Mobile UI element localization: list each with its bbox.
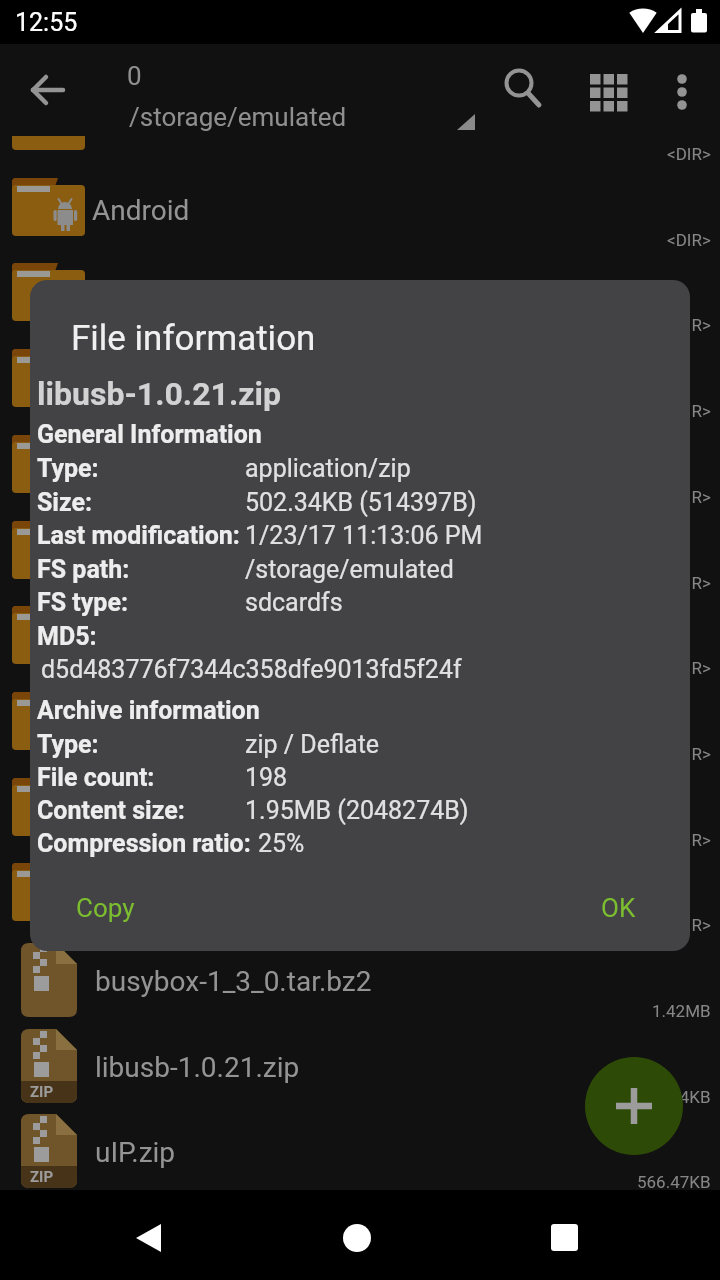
button[interactable] (0, 947, 720, 1033)
staticText: <DIR> (667, 658, 711, 678)
staticText: /storage/emulated (129, 102, 347, 132)
button[interactable] (110, 50, 490, 134)
staticText: MD5: (37, 622, 97, 651)
button[interactable] (494, 62, 550, 118)
staticText: 566.47KB (637, 1172, 711, 1192)
staticText: Type: (37, 454, 99, 483)
staticText: <DIR> (667, 315, 711, 335)
staticText: DCIM (92, 279, 161, 312)
staticText: Podcasts (92, 794, 210, 827)
button[interactable] (656, 62, 708, 118)
staticText: 1.95MB (2048274B) (245, 796, 469, 825)
staticText: zip / Deflate (245, 730, 380, 759)
button[interactable] (520, 1208, 590, 1264)
button[interactable] (0, 861, 720, 947)
staticText: sdcardfs (245, 588, 343, 617)
button[interactable] (0, 690, 720, 776)
staticText: Download (92, 365, 217, 398)
staticText: General Information (37, 420, 262, 449)
staticText: <DIR> (667, 230, 711, 250)
staticText: <DIR> (667, 744, 711, 764)
staticText: Notifications (92, 622, 252, 655)
staticText: Compression ratio: (37, 829, 251, 858)
staticText: 0 (127, 61, 142, 91)
staticText: <DIR> (667, 144, 711, 164)
staticText: Last modification: (37, 521, 240, 550)
staticText: 1/23/17 11:13:06 PM (245, 521, 483, 550)
staticText: Size: (37, 488, 93, 517)
staticText: d5d483776f7344c358dfe9013fd5f24f (41, 655, 462, 684)
staticText: Type: (37, 730, 99, 759)
button[interactable]: OK (570, 880, 666, 936)
staticText: <DIR> (667, 487, 711, 507)
button[interactable] (0, 261, 720, 347)
staticText: 198 (245, 763, 288, 792)
button[interactable] (325, 1208, 395, 1264)
staticText: 502.34KB (637, 1087, 711, 1107)
staticText: <DIR> (667, 573, 711, 593)
button[interactable] (0, 1033, 720, 1119)
staticText: FS path: (37, 555, 130, 584)
staticText: Android (92, 194, 190, 227)
staticText: /storage/emulated (245, 555, 454, 584)
button[interactable] (0, 1118, 720, 1204)
staticText: Copy (76, 893, 135, 923)
staticText: Music (92, 537, 168, 570)
button[interactable] (0, 776, 720, 862)
button[interactable] (580, 62, 636, 118)
button[interactable] (0, 347, 720, 433)
staticText: libusb-1.0.21.zip (95, 1051, 300, 1084)
button[interactable] (22, 62, 78, 118)
staticText: <DIR> (667, 830, 711, 850)
staticText: Pictures (92, 708, 195, 741)
button[interactable] (0, 90, 720, 176)
staticText: uIP.zip (95, 1136, 176, 1169)
button[interactable] (116, 1208, 186, 1264)
button[interactable] (585, 1057, 683, 1155)
staticText: Content size: (37, 796, 185, 825)
staticText: File information (71, 318, 316, 359)
button[interactable]: Copy (45, 880, 165, 936)
staticText: Alarms (92, 108, 181, 141)
staticText: Archive information (37, 696, 260, 725)
staticText: 12:55 (15, 8, 78, 37)
staticText: busybox-1_3_0.tar.bz2 (95, 965, 372, 998)
staticText: OK (601, 893, 636, 923)
staticText: File count: (37, 763, 155, 792)
staticText: application/zip (245, 454, 411, 483)
staticText: 502.34KB (514397B) (245, 488, 477, 517)
staticText: FS type: (37, 588, 128, 617)
staticText: ZIP (30, 1083, 54, 1101)
staticText: Movies (92, 451, 182, 484)
button[interactable] (0, 176, 720, 262)
button[interactable] (0, 433, 720, 519)
staticText: libusb-1.0.21.zip (37, 375, 281, 413)
staticText: ZIP (30, 1168, 54, 1186)
staticText: <DIR> (667, 915, 711, 935)
staticText: 25% (258, 829, 305, 858)
button[interactable] (0, 604, 720, 690)
staticText: <DIR> (667, 401, 711, 421)
button[interactable] (0, 519, 720, 605)
staticText: Ringtones (92, 879, 217, 912)
staticText: 1.42MB (652, 1001, 711, 1021)
